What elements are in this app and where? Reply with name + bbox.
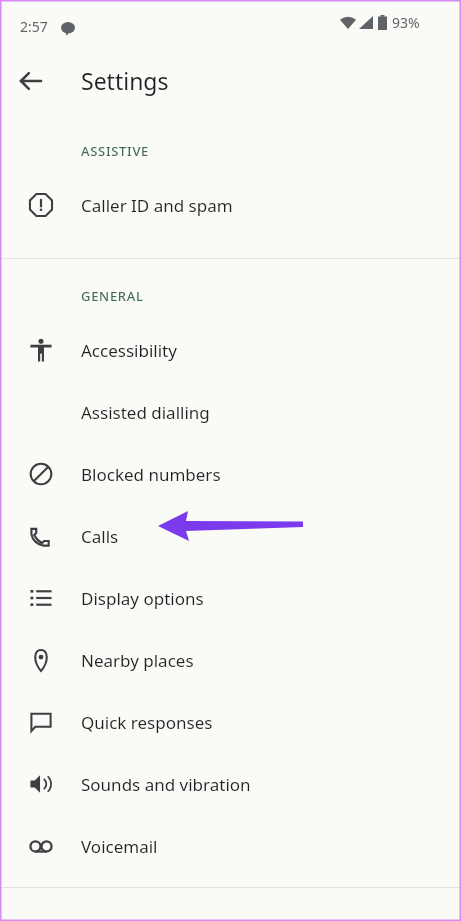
button[interactable]: Accessibility <box>0 319 461 381</box>
staticText: Blocked numbers <box>81 463 221 486</box>
staticText: Accessibility <box>81 339 177 362</box>
button[interactable]: Display options <box>0 567 461 629</box>
button[interactable]: Calls <box>0 505 461 567</box>
button[interactable]: Blocked numbers <box>0 443 461 505</box>
button[interactable]: Assisted dialling <box>0 381 461 443</box>
staticText: ASSISTIVE <box>81 142 150 160</box>
button[interactable]: Quick responses <box>0 691 461 753</box>
button[interactable]: Sounds and vibration <box>0 753 461 815</box>
staticText: Display options <box>81 587 204 610</box>
button[interactable]: Nearby places <box>0 629 461 691</box>
staticText: Voicemail <box>81 835 158 858</box>
staticText: Nearby places <box>81 649 194 672</box>
staticText: 93% <box>392 13 420 32</box>
button[interactable]: Voicemail <box>0 815 461 877</box>
staticText: Sounds and vibration <box>81 773 251 796</box>
staticText: ADVANCED <box>81 915 156 921</box>
staticText: Settings <box>81 65 169 96</box>
staticText: GENERAL <box>81 287 144 305</box>
staticText: 2:57 <box>20 17 48 36</box>
button[interactable]: Back <box>9 59 53 103</box>
staticText: Assisted dialling <box>81 401 210 424</box>
button[interactable]: Caller ID and spam <box>0 174 461 236</box>
staticText: Quick responses <box>81 711 213 734</box>
staticText: Caller ID and spam <box>81 194 233 217</box>
staticText: Calls <box>81 525 119 548</box>
